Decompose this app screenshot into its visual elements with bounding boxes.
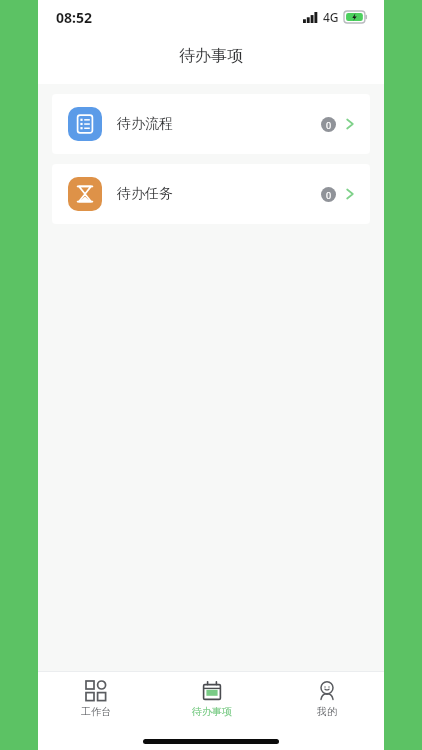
button[interactable]: 工作台 — [38, 675, 154, 724]
staticText: 08:52 — [56, 8, 92, 27]
staticText: 工作台 — [81, 705, 111, 718]
staticText: 待办流程 — [117, 115, 173, 133]
button[interactable]: 待办流程 — [52, 94, 370, 154]
staticText: 待办事项 — [179, 46, 243, 66]
staticText: 0 — [326, 189, 332, 201]
button[interactable]: 我的 — [269, 675, 384, 724]
staticText: 待办任务 — [117, 185, 173, 203]
staticText: 0 — [326, 119, 332, 131]
staticText: 待办事项 — [192, 705, 232, 718]
staticText: 4G — [323, 9, 339, 25]
staticText: 我的 — [317, 705, 337, 718]
button[interactable]: 待办任务 — [52, 164, 370, 224]
button[interactable]: 待办事项 — [154, 675, 269, 724]
